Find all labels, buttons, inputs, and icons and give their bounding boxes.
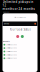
staticText: Get started	[2, 11, 9, 13]
staticText: Unlimited pickups in 12 months or 24 mon…	[2, 0, 34, 11]
staticText: BRAND	[4, 23, 9, 25]
staticText: Your Goal Status	[9, 28, 30, 31]
staticText: Unlimited access	[6, 44, 17, 46]
staticText: Unlimited access	[6, 54, 17, 56]
staticText: Benefits	[3, 41, 10, 42]
staticText: Unlimited access	[6, 51, 17, 52]
staticText: Unlimited access	[6, 57, 17, 59]
staticText: Unlimited access	[6, 47, 17, 49]
staticText: example.com	[16, 16, 25, 18]
